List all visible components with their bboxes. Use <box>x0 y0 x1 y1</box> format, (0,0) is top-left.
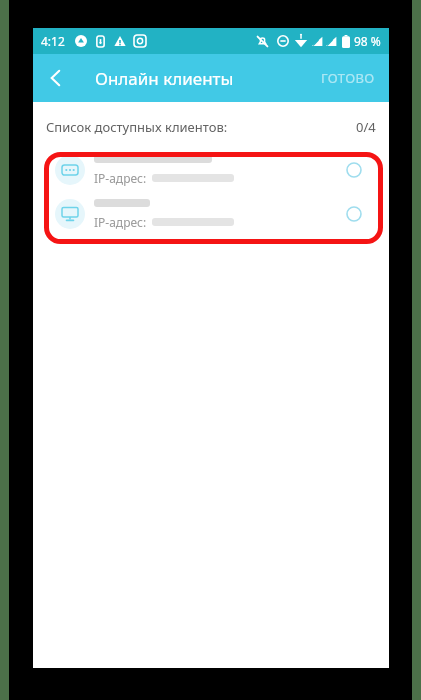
staticText: Список доступных клиентов: <box>46 118 228 136</box>
staticText: ГОТОВО <box>321 69 375 87</box>
button[interactable]: IP-адрес: <box>46 192 376 236</box>
button[interactable]: IP-адрес: <box>46 148 376 192</box>
staticText: 4:12 <box>41 33 65 49</box>
staticText: IP-адрес: <box>94 214 147 230</box>
button[interactable]: Выбрать клиента <box>341 157 367 183</box>
staticText: 98 % <box>354 33 381 49</box>
button[interactable]: ГОТОВО <box>307 57 389 99</box>
button[interactable]: Выбрать клиента <box>341 201 367 227</box>
button[interactable]: Назад <box>33 55 79 101</box>
staticText: 0/4 <box>356 118 376 136</box>
staticText: IP-адрес: <box>94 170 147 186</box>
staticText: Онлайн клиенты <box>95 67 234 90</box>
